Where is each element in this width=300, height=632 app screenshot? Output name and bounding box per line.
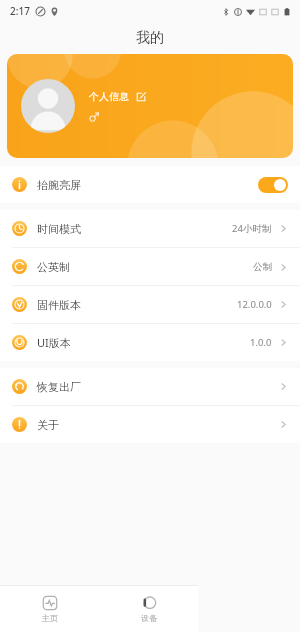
- staticText: 关于: [37, 418, 59, 432]
- other: Edit profile: [136, 92, 146, 102]
- staticText: 抬腕亮屏: [37, 178, 81, 192]
- staticText: 设备: [141, 613, 157, 623]
- button[interactable]: 个人信息: [7, 54, 293, 158]
- button[interactable]: 个人信息: [89, 90, 146, 103]
- staticText: 恢复出厂: [37, 380, 81, 394]
- staticText: 1.0.0: [250, 336, 272, 349]
- button[interactable]: 抬腕亮屏: [0, 166, 300, 203]
- staticText: 个人信息: [89, 90, 129, 103]
- staticText: UI版本: [37, 335, 71, 350]
- staticText: 主页: [42, 613, 58, 623]
- button[interactable]: 主页: [0, 585, 99, 632]
- staticText: 固件版本: [37, 298, 81, 312]
- staticText: 时间模式: [37, 222, 81, 236]
- staticText: 我的: [136, 29, 164, 47]
- button[interactable]: 公英制: [0, 248, 300, 286]
- staticText: 2:17: [10, 4, 30, 18]
- button[interactable]: 恢复出厂: [0, 368, 300, 406]
- staticText: 24小时制: [232, 222, 272, 235]
- button[interactable]: 关于: [0, 406, 300, 443]
- button[interactable]: 时间模式: [0, 210, 300, 248]
- button[interactable]: Raise to wake toggle: [258, 177, 288, 193]
- button[interactable]: 固件版本: [0, 286, 300, 324]
- staticText: 公制: [253, 261, 272, 273]
- button[interactable]: UI版本: [0, 324, 300, 361]
- staticText: 公英制: [37, 260, 70, 274]
- button[interactable]: 设备: [99, 585, 198, 632]
- staticText: 12.0.0.0: [237, 298, 272, 311]
